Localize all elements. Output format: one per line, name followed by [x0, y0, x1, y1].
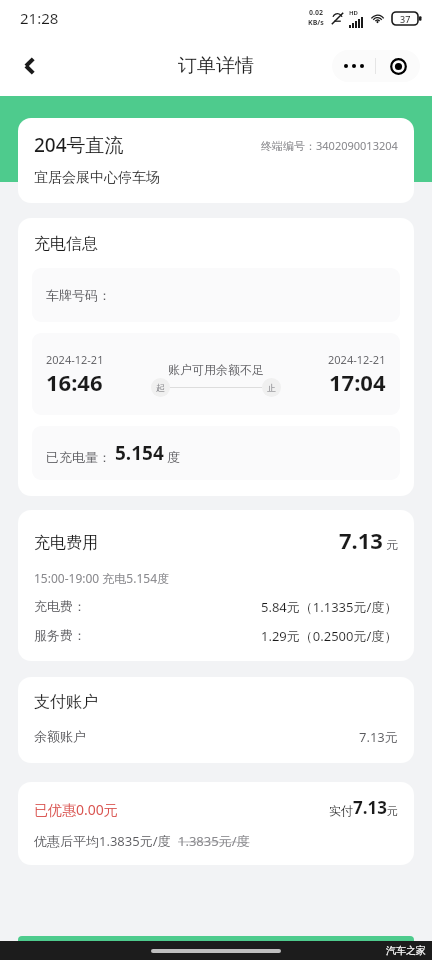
staticText: 宜居会展中心停车场: [34, 169, 160, 187]
staticText: 元: [386, 537, 398, 552]
staticText: 2024-12-21: [328, 352, 386, 367]
staticText: 7.13: [353, 796, 387, 819]
staticText: 度: [167, 449, 180, 465]
staticText: 15:00-19:00 充电5.154度: [34, 570, 170, 586]
staticText: 17:04: [329, 367, 386, 397]
staticText: 21:28: [20, 8, 59, 28]
staticText: 车牌号码：: [46, 287, 111, 303]
staticText: 服务费：: [34, 627, 86, 643]
staticText: 支付账户: [34, 692, 98, 712]
staticText: 余额账户: [34, 728, 86, 744]
staticText: 7.13元: [359, 728, 398, 746]
button[interactable]: 充电费用: [18, 510, 414, 661]
staticText: 5.84元（1.1335元/度）: [261, 598, 398, 616]
staticText: 汽车之家: [386, 944, 426, 957]
staticText: 2024-12-21: [46, 352, 104, 367]
staticText: 起: [156, 382, 165, 393]
button[interactable]: Close: [376, 50, 420, 82]
button[interactable]: More: [332, 50, 375, 82]
staticText: 5.154: [115, 440, 164, 466]
staticText: 实付: [329, 803, 353, 818]
staticText: 元: [387, 804, 398, 818]
staticText: 1.3835元/度: [178, 832, 250, 850]
staticText: 16:46: [46, 367, 103, 397]
button[interactable]: Back: [8, 44, 52, 88]
button[interactable]: 充电信息: [18, 218, 414, 496]
button[interactable]: 204号直流: [18, 118, 414, 203]
staticText: 1.29元（0.2500元/度）: [261, 627, 398, 645]
staticText: 已充电量：: [46, 449, 111, 465]
staticText: 已优惠0.00元: [34, 800, 118, 819]
staticText: 止: [267, 382, 276, 393]
staticText: 0.02: [309, 8, 323, 18]
staticText: 204号直流: [34, 132, 124, 158]
button[interactable]: Confirm: [18, 936, 414, 941]
staticText: KB/s: [308, 18, 324, 28]
staticText: 充电信息: [34, 234, 98, 254]
staticText: 优惠后平均1.3835元/度: [34, 832, 171, 850]
button[interactable]: 已优惠0.00元: [18, 782, 414, 865]
staticText: 充电费：: [34, 598, 86, 614]
staticText: 7.13: [339, 525, 383, 555]
staticText: 订单详情: [178, 54, 254, 78]
staticText: 账户可用余额不足: [168, 362, 264, 377]
button[interactable]: 支付账户: [18, 677, 414, 763]
staticText: HD: [349, 9, 358, 17]
staticText: 37: [400, 13, 411, 25]
staticText: 终端编号：3402090013204: [261, 138, 398, 153]
staticText: 充电费用: [34, 533, 98, 553]
